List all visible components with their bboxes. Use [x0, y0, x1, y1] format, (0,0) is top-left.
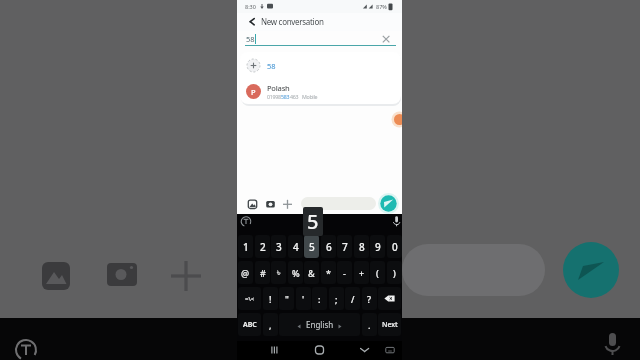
button[interactable]: * [321, 261, 336, 284]
staticText: 6 [326, 240, 332, 254]
button[interactable]: English [279, 313, 360, 336]
button[interactable]: ' [296, 287, 311, 310]
staticText: 8 [359, 240, 365, 254]
staticText: " [285, 293, 289, 305]
staticText: / [351, 293, 355, 305]
button[interactable]: =\< [238, 287, 261, 310]
staticText: 463 [290, 93, 299, 100]
button[interactable] [240, 78, 401, 104]
staticText: + [359, 267, 365, 279]
staticText: 3 [276, 240, 282, 254]
button[interactable]: 7 [337, 235, 352, 258]
staticText: 583 [281, 93, 290, 100]
button[interactable]: ৳ [271, 261, 286, 284]
staticText: ABC [243, 320, 257, 330]
staticText: 58 [267, 61, 276, 71]
button[interactable]: " [279, 287, 294, 310]
staticText: * [326, 267, 331, 279]
button[interactable] [282, 198, 294, 210]
staticText: & [308, 267, 315, 279]
staticText: 8:30 [245, 3, 256, 10]
button[interactable]: / [345, 287, 360, 310]
staticText: : [318, 293, 321, 305]
staticText: 58 [246, 34, 255, 44]
staticText: 5 [309, 240, 315, 254]
button[interactable]: - [337, 261, 352, 284]
staticText: ; [335, 293, 338, 305]
button[interactable]: Next [378, 313, 401, 336]
button[interactable] [265, 198, 277, 210]
staticText: 87% [376, 3, 387, 10]
staticText: @ [241, 267, 250, 279]
button[interactable]: 9 [370, 235, 385, 258]
button[interactable]: : [312, 287, 327, 310]
staticText: ? [367, 293, 372, 305]
staticText: =\< [245, 295, 255, 303]
button[interactable]: 4 [288, 235, 303, 258]
staticText: Mobile [302, 93, 318, 100]
staticText: - [343, 267, 346, 279]
button[interactable]: 6 [321, 235, 336, 258]
staticText: 2 [260, 240, 266, 254]
button[interactable]: % [288, 261, 303, 284]
button[interactable] [301, 197, 376, 210]
button[interactable]: 3 [271, 235, 286, 258]
staticText: 9 [375, 240, 381, 254]
button[interactable]: 1 [238, 235, 253, 258]
button[interactable]: # [255, 261, 270, 284]
staticText: % [292, 267, 300, 279]
button[interactable]: 0 [387, 235, 402, 258]
button[interactable]: & [304, 261, 319, 284]
button[interactable]: , [263, 313, 278, 336]
button[interactable]: 5 [304, 235, 319, 258]
staticText: ' [302, 293, 305, 305]
button[interactable]: ( [370, 261, 385, 284]
staticText: 1 [243, 240, 249, 254]
staticText: , [269, 319, 272, 331]
staticText: Polash [267, 83, 290, 93]
button[interactable]: . [362, 313, 377, 336]
button[interactable]: ? [362, 287, 377, 310]
staticText: New conversation [261, 16, 324, 27]
staticText: # [260, 267, 266, 279]
button[interactable] [378, 287, 401, 310]
staticText: 5 [307, 208, 319, 235]
button[interactable]: ! [263, 287, 278, 310]
staticText: P [251, 87, 256, 97]
button[interactable]: ABC [238, 313, 261, 336]
button[interactable] [266, 343, 283, 358]
staticText: 4 [293, 240, 299, 254]
staticText: . [368, 319, 371, 331]
button[interactable] [382, 343, 398, 358]
button[interactable]: ; [329, 287, 344, 310]
button[interactable]: + [354, 261, 369, 284]
button[interactable]: 8 [354, 235, 369, 258]
button[interactable] [379, 194, 398, 213]
staticText: 01998 [267, 93, 281, 100]
button[interactable]: @ [238, 261, 253, 284]
button[interactable]: 2 [255, 235, 270, 258]
button[interactable] [240, 52, 401, 78]
staticText: 0 [392, 240, 398, 254]
staticText: ( [376, 267, 379, 279]
staticText: English [306, 319, 334, 330]
staticText: ৳ [277, 268, 281, 277]
staticText: ) [393, 267, 396, 279]
button[interactable] [311, 343, 328, 358]
button[interactable] [247, 198, 259, 210]
staticText: 7 [342, 240, 348, 254]
button[interactable]: ) [387, 261, 402, 284]
staticText: Next [382, 320, 398, 330]
button[interactable] [356, 343, 373, 358]
button[interactable] [245, 14, 259, 28]
button[interactable] [379, 33, 393, 46]
staticText: ! [269, 293, 272, 305]
